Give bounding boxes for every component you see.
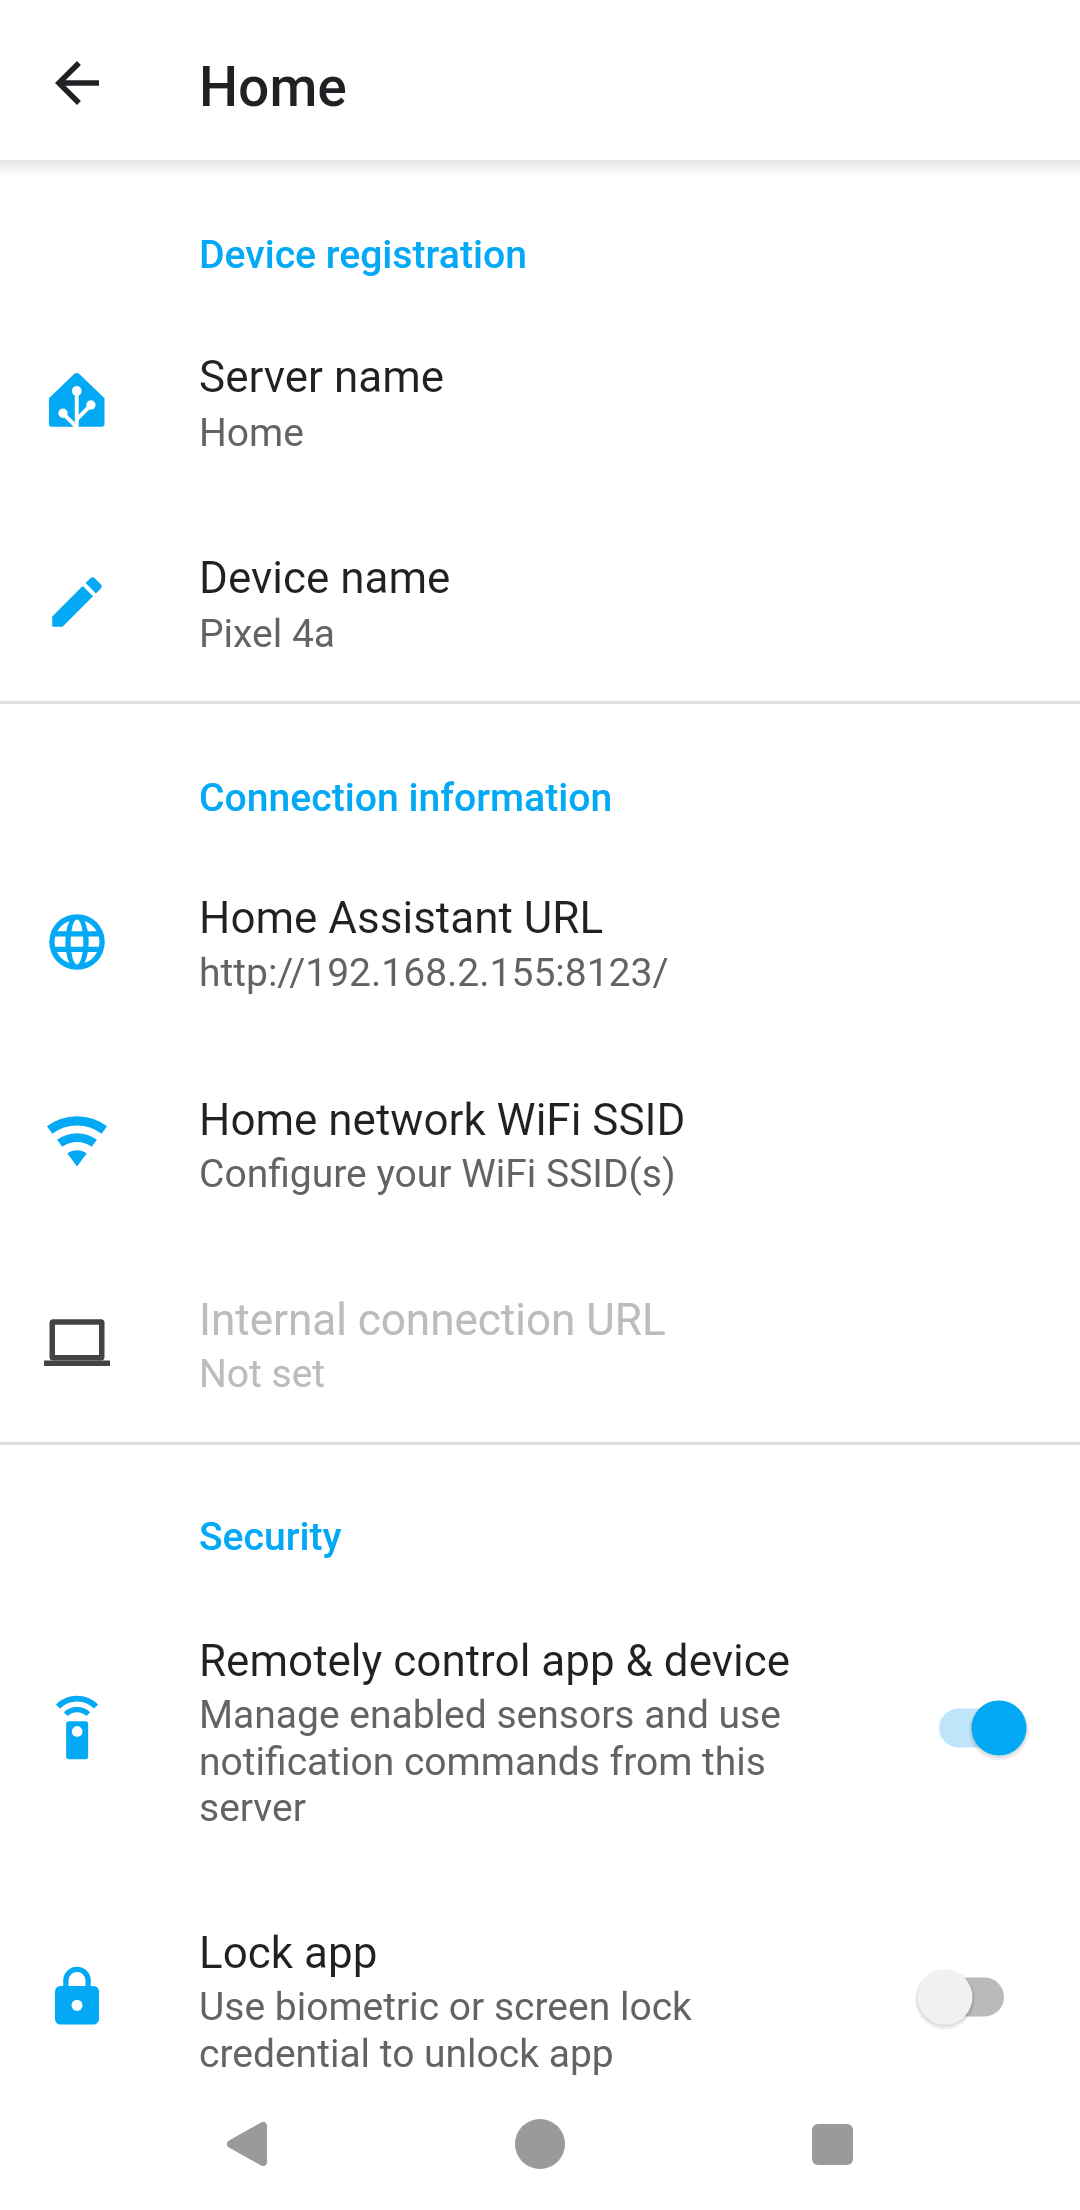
staticText: http://192.168.2.155:8123/ [199, 950, 793, 996]
button[interactable]: Home Assistant URL [0, 860, 1080, 997]
staticText: Home network WiFi SSID [199, 1094, 793, 1146]
staticText: Home Assistant URL [199, 892, 793, 944]
button[interactable]: Recent apps [773, 2090, 893, 2210]
staticText: Manage enabled sensors and use notificat… [199, 1692, 793, 1830]
button[interactable]: Device name [0, 520, 1080, 656]
staticText: Remotely control app & device [199, 1635, 793, 1687]
staticText: Device registration [199, 232, 527, 278]
button[interactable]: Home network WiFi SSID [0, 1062, 1080, 1197]
staticText: Lock app [199, 1927, 793, 1979]
button[interactable]: Server name [0, 319, 1080, 455]
button[interactable]: Disabled switch [915, 1967, 1029, 2027]
staticText: Connection information [199, 775, 613, 821]
button[interactable]: Home [480, 2090, 600, 2210]
staticText: Security [199, 1514, 342, 1560]
staticText: Device name [199, 552, 793, 604]
button[interactable]: Back [186, 2090, 306, 2210]
staticText: Use biometric or screen lock credential … [199, 1984, 793, 2076]
staticText: Configure your WiFi SSID(s) [199, 1151, 793, 1197]
button[interactable]: Lock app [0, 1895, 1080, 2077]
button[interactable]: Enabled switch [915, 1698, 1029, 1758]
button[interactable]: Navigate up [44, 50, 110, 116]
staticText: Internal connection URL [199, 1294, 793, 1346]
staticText: Home [199, 55, 347, 119]
button[interactable]: Internal connection URL [0, 1262, 1080, 1397]
staticText: Home [199, 410, 793, 456]
staticText: Not set [199, 1351, 793, 1397]
staticText: Pixel 4a [199, 611, 793, 657]
button[interactable]: Remotely control app & device [0, 1603, 1080, 1832]
staticText: Server name [199, 351, 793, 403]
